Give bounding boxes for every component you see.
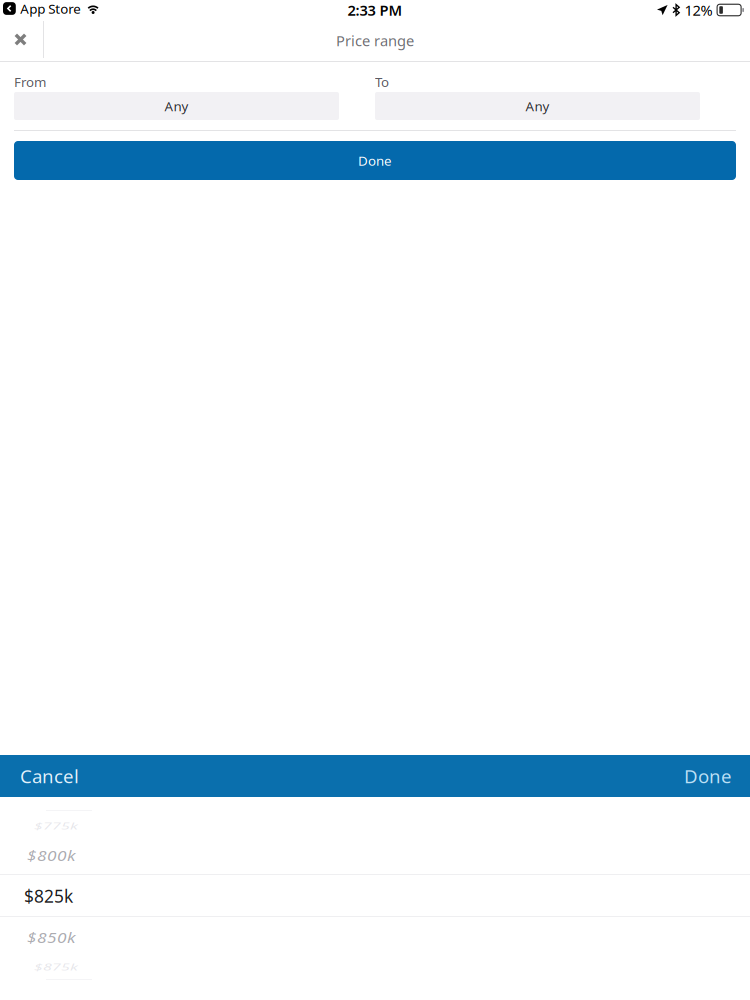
staticText: Cancel	[20, 764, 79, 788]
button[interactable]: To	[375, 73, 700, 120]
staticText: 12%	[685, 0, 713, 20]
button[interactable]: Close	[0, 20, 43, 61]
staticText: $775k	[34, 815, 78, 837]
staticText: 2:33 PM	[347, 0, 402, 20]
button[interactable]: From	[14, 73, 339, 120]
button[interactable]: Done	[14, 141, 736, 180]
button[interactable]: Done	[640, 755, 750, 797]
staticText: $800k	[27, 843, 76, 866]
button[interactable]: Cancel	[0, 755, 120, 797]
staticText: Done	[684, 764, 732, 788]
staticText: $850k	[27, 925, 76, 948]
staticText: $825k	[24, 884, 73, 907]
staticText: Any	[525, 97, 549, 115]
staticText: Price range	[336, 31, 414, 50]
staticText: From	[14, 73, 46, 91]
staticText: App Store	[20, 0, 81, 17]
staticText: $875k	[34, 956, 78, 978]
staticText: Done	[358, 152, 392, 169]
staticText: Any	[164, 97, 188, 115]
staticText: To	[375, 73, 389, 91]
